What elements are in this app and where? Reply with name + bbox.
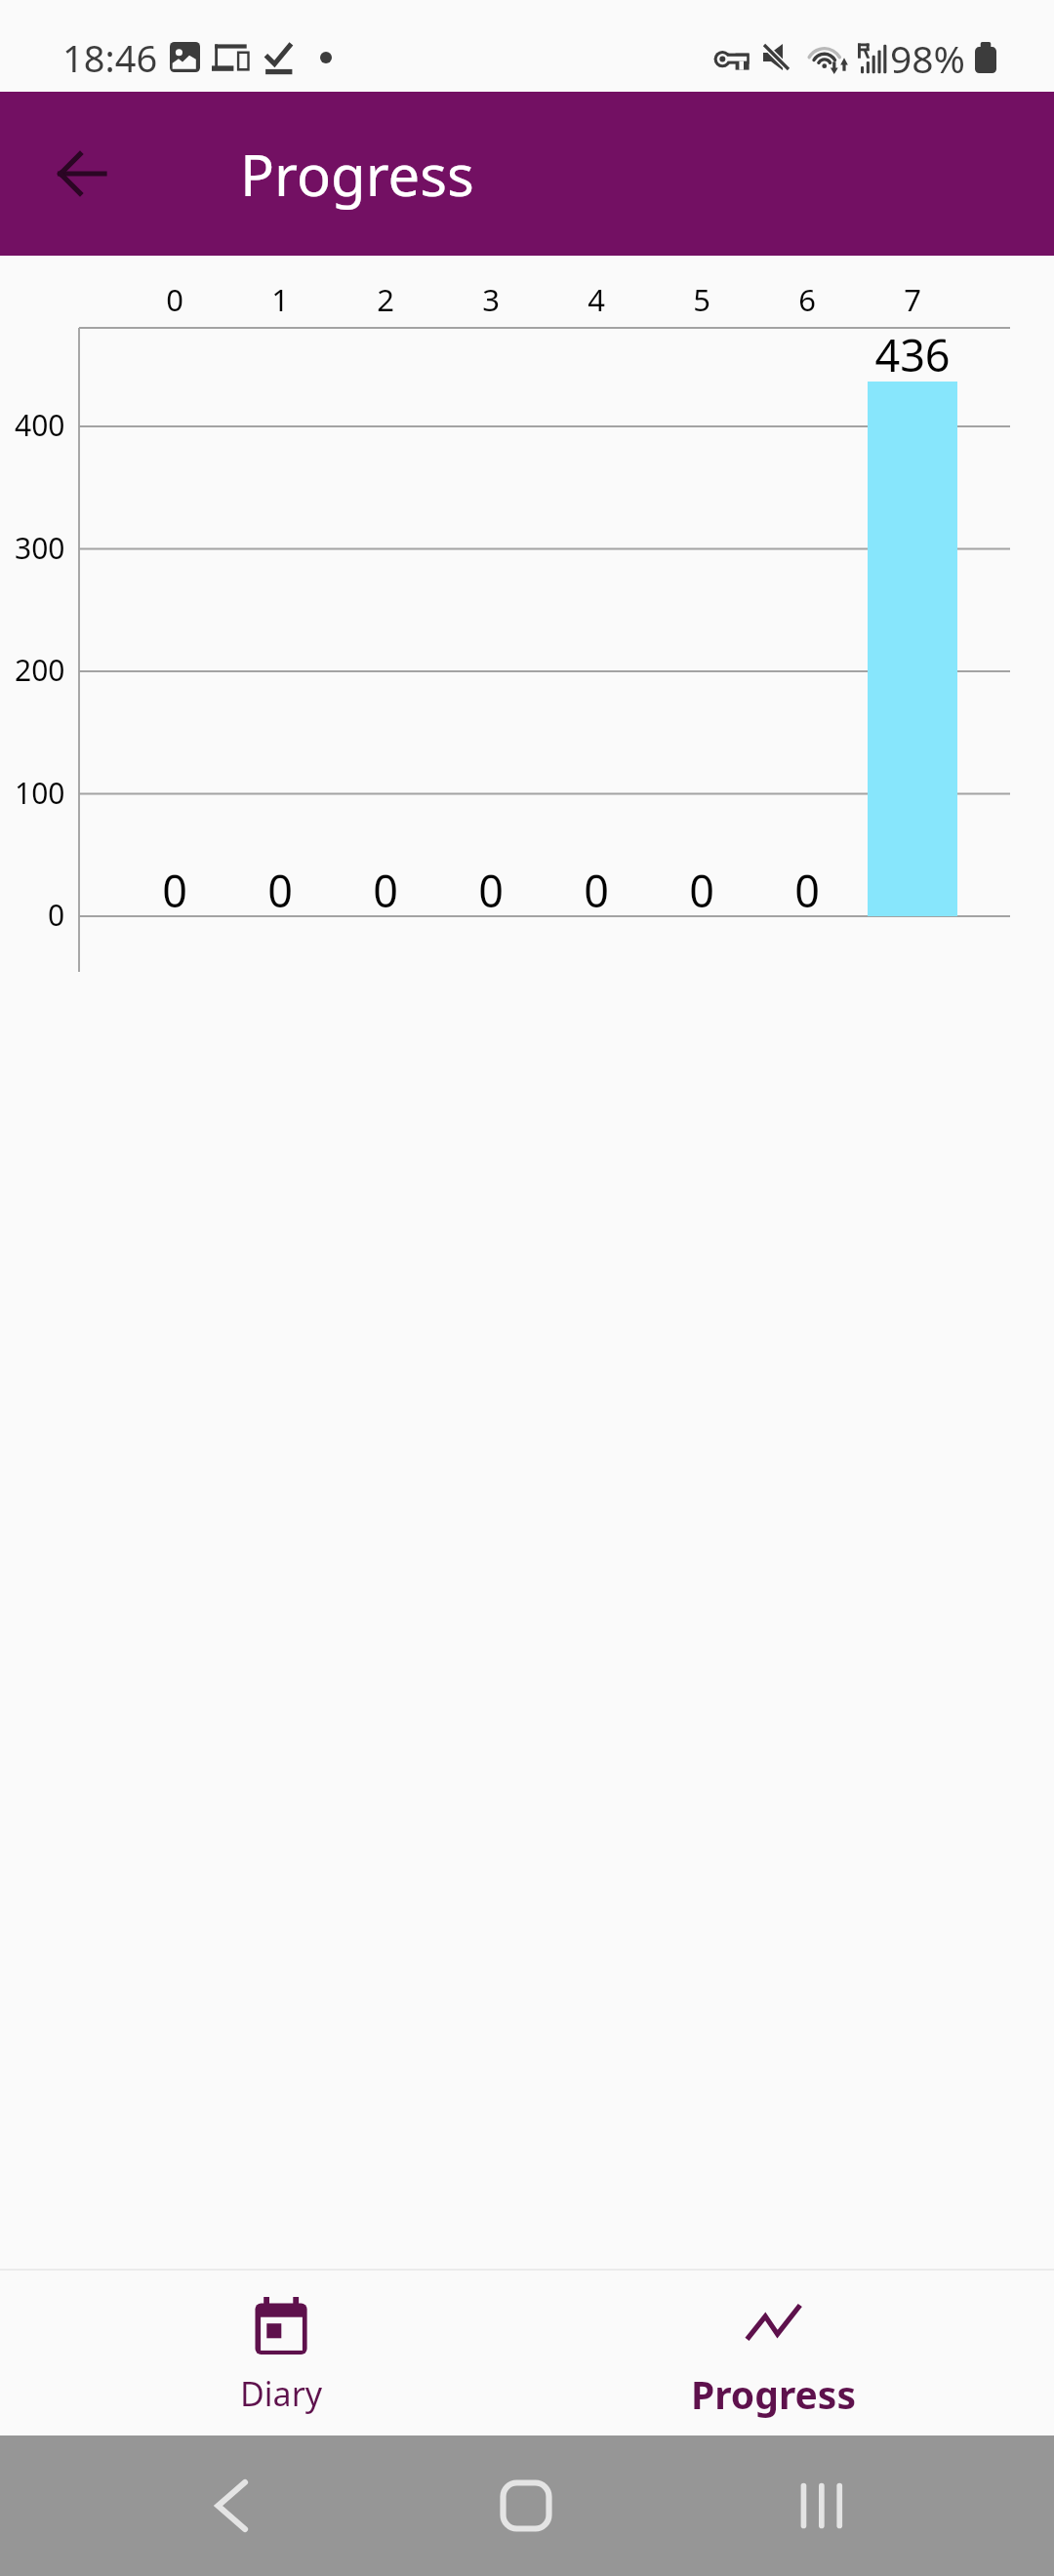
staticText: 3 xyxy=(482,279,500,320)
button[interactable]: Navigate up xyxy=(35,127,129,221)
staticText: 1 xyxy=(271,279,289,320)
staticText: 4 xyxy=(588,279,605,320)
button[interactable]: Diary xyxy=(35,2271,527,2435)
staticText: 0 xyxy=(267,861,293,920)
staticText: 300 xyxy=(15,528,65,568)
staticText: 436 xyxy=(874,325,951,384)
staticText: 2 xyxy=(377,279,394,320)
staticText: 0 xyxy=(162,861,187,920)
staticText: 0 xyxy=(689,861,714,920)
staticText: 200 xyxy=(15,650,65,690)
button[interactable]: Progress xyxy=(527,2271,1019,2435)
staticText: 0 xyxy=(48,895,65,935)
staticText: 98% xyxy=(890,32,966,84)
staticText: 400 xyxy=(15,405,65,445)
staticText: 100 xyxy=(15,773,65,813)
staticText: Progress xyxy=(691,2368,856,2420)
staticText: 6 xyxy=(798,279,816,320)
staticText: 18:46 xyxy=(62,32,158,83)
staticText: Diary xyxy=(240,2371,323,2416)
staticText: 0 xyxy=(584,861,609,920)
staticText: 0 xyxy=(794,861,820,920)
button[interactable]: Home xyxy=(499,2478,553,2533)
staticText: 0 xyxy=(166,279,183,320)
button[interactable]: Recent apps xyxy=(794,2478,849,2533)
staticText: Progress xyxy=(240,136,474,213)
staticText: 0 xyxy=(478,861,504,920)
staticText: 0 xyxy=(373,861,398,920)
button[interactable]: Back xyxy=(204,2478,259,2533)
staticText: 5 xyxy=(693,279,710,320)
staticText: 7 xyxy=(904,279,921,320)
